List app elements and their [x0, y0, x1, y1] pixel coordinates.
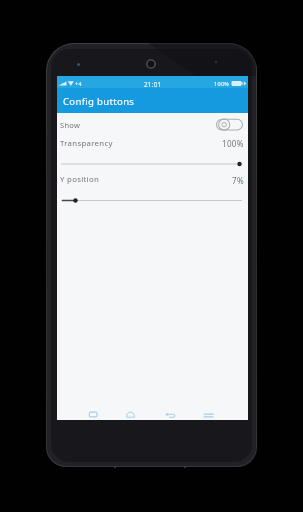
staticText: Transparency [60, 138, 113, 149]
button[interactable] [60, 155, 245, 171]
button[interactable] [60, 192, 245, 208]
button[interactable] [86, 407, 101, 420]
button[interactable] [57, 88, 248, 113]
staticText: 21:01 [144, 80, 162, 88]
staticText: 7% [232, 175, 244, 186]
button[interactable] [123, 407, 138, 420]
staticText: +4 [75, 80, 82, 87]
button[interactable] [213, 115, 245, 134]
button[interactable] [201, 407, 216, 420]
staticText: Config buttons [63, 95, 135, 108]
staticText: Y position [60, 174, 100, 185]
staticText: 100% [214, 80, 230, 87]
button[interactable] [163, 407, 178, 420]
staticText: Show [60, 120, 81, 130]
staticText: 100% [222, 138, 244, 149]
button[interactable]: Show [57, 113, 248, 137]
